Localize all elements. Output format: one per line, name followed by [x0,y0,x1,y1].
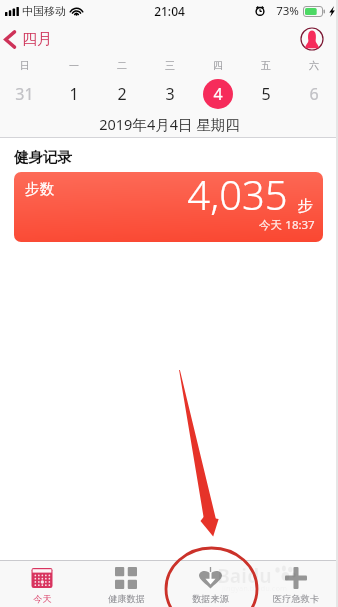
staticText: 一 [69,59,79,72]
staticText: 4,035 [187,172,288,221]
button[interactable]: 1 [49,75,98,113]
button[interactable]: 4 [194,75,242,113]
staticText: 日 [20,59,30,72]
staticText: 18:37 [285,217,315,233]
staticText: 健身记录 [14,148,72,166]
button[interactable]: 医疗急救卡 [253,561,338,607]
staticText: 三 [165,59,175,72]
staticText: 四月 [22,30,52,49]
staticText: jingyan.baidu.com [222,583,287,593]
button[interactable]: 今天 [0,561,84,607]
button[interactable]: Profile [300,27,324,51]
staticText: Bai [217,563,247,589]
staticText: 今天 [259,218,282,232]
button[interactable]: 四月 [0,30,62,49]
staticText: 今天 [33,593,52,605]
button[interactable]: 2 [98,75,146,113]
staticText: 21:04 [154,3,185,19]
staticText: 健康数据 [108,593,145,605]
staticText: 五 [261,59,271,72]
button[interactable]: 数据来源 [168,561,253,607]
button[interactable]: 3 [146,75,194,113]
staticText: 6 [309,83,319,105]
button[interactable]: 步数 [14,172,323,242]
staticText: 2019年4月4日 星期四 [99,114,240,134]
button[interactable]: 31 [0,75,49,113]
button[interactable]: 5 [242,75,290,113]
staticText: 医疗急救卡 [273,593,319,605]
button[interactable]: 6 [290,75,338,113]
staticText: 1 [69,83,79,105]
button[interactable]: 健康数据 [84,561,168,607]
staticText: 73% [276,3,299,19]
staticText: 数据来源 [192,593,229,605]
staticText: 四 [213,59,223,72]
staticText: 4 [213,83,223,105]
staticText: du [247,563,272,589]
staticText: 步 [297,196,313,216]
staticText: 二 [117,59,127,72]
staticText: 步数 [25,180,54,198]
staticText: 31 [15,83,34,105]
staticText: 六 [309,59,319,72]
staticText: 5 [261,83,271,105]
staticText: 2 [117,83,127,105]
staticText: 3 [165,83,175,105]
staticText: 中国移动 [22,4,66,18]
